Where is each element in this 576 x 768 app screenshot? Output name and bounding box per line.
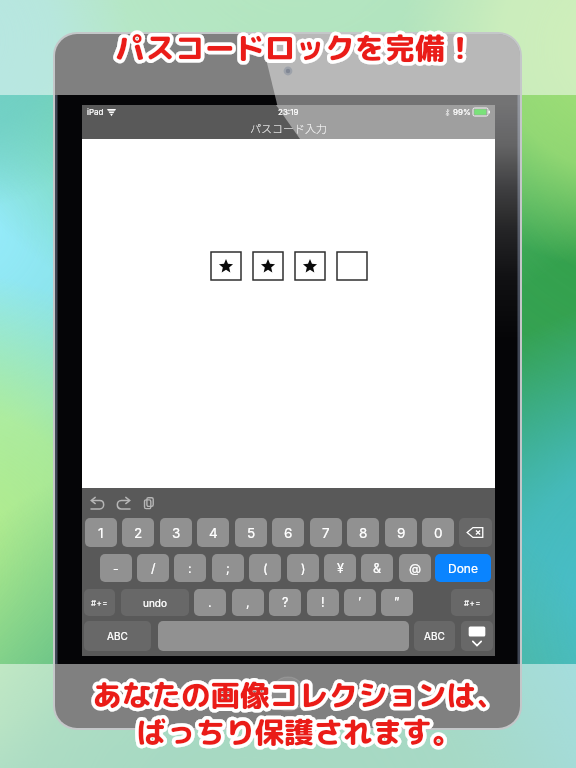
button[interactable]: 7 xyxy=(310,518,342,547)
button[interactable]: Backspace xyxy=(459,518,492,547)
button[interactable]: Copy xyxy=(142,496,156,510)
staticText: . xyxy=(208,595,212,610)
staticText: 6 xyxy=(284,525,293,541)
staticText: 4 xyxy=(209,525,218,541)
staticText: 8 xyxy=(359,525,368,541)
button[interactable]: 8 xyxy=(347,518,379,547)
staticText: ” xyxy=(394,595,400,610)
button[interactable]: ’ xyxy=(344,589,376,616)
button[interactable]: 4 xyxy=(197,518,229,547)
staticText: ABC xyxy=(424,630,445,642)
staticText: / xyxy=(151,561,156,576)
staticText: ABC xyxy=(107,630,128,642)
button[interactable]: @ xyxy=(399,554,431,582)
staticText: 9 xyxy=(397,525,406,541)
staticText: - xyxy=(113,561,119,576)
button[interactable]: #+= xyxy=(84,589,115,616)
button[interactable]: , xyxy=(232,589,264,616)
staticText: & xyxy=(373,561,382,576)
button[interactable]: 6 xyxy=(272,518,304,547)
staticText: ’ xyxy=(358,595,362,610)
button[interactable]: ( xyxy=(249,554,281,582)
button[interactable]: / xyxy=(137,554,169,582)
button[interactable]: . xyxy=(194,589,226,616)
staticText: undo xyxy=(143,597,167,609)
staticText: , xyxy=(246,595,250,610)
button[interactable]: ABC xyxy=(414,621,455,651)
button[interactable]: 2 xyxy=(122,518,154,547)
button[interactable]: 3 xyxy=(160,518,192,547)
staticText: Done xyxy=(448,561,478,576)
staticText: iPad xyxy=(87,107,104,117)
button[interactable]: 1 xyxy=(85,518,117,547)
staticText: 0 xyxy=(434,525,443,541)
staticText: 1 xyxy=(98,525,104,541)
staticText: 7 xyxy=(322,525,330,541)
button[interactable]: ABC xyxy=(84,621,151,651)
button[interactable]: ; xyxy=(212,554,244,582)
button[interactable]: Passcode digit 4 xyxy=(337,252,367,280)
button[interactable]: ! xyxy=(307,589,339,616)
staticText: パスコード入力 xyxy=(250,120,327,136)
staticText: ¥ xyxy=(337,561,344,576)
staticText: ; xyxy=(226,561,230,576)
staticText: #+= xyxy=(464,598,481,608)
button[interactable]: ? xyxy=(269,589,301,616)
button[interactable]: & xyxy=(361,554,393,582)
button[interactable]: Redo xyxy=(116,496,130,510)
button[interactable]: ) xyxy=(287,554,319,582)
staticText: ! xyxy=(321,595,325,610)
staticText: #+= xyxy=(91,598,108,608)
button[interactable]: 9 xyxy=(385,518,417,547)
button[interactable]: Passcode digit 2 xyxy=(253,252,283,280)
button[interactable]: : xyxy=(174,554,206,582)
staticText: ) xyxy=(301,561,306,576)
button[interactable]: Passcode digit 3 xyxy=(295,252,325,280)
button[interactable]: Hide keyboard xyxy=(461,621,493,651)
staticText: 99% xyxy=(453,107,471,117)
button[interactable]: Passcode digit 1 xyxy=(211,252,241,280)
button[interactable]: - xyxy=(100,554,132,582)
button[interactable]: Done xyxy=(435,554,491,582)
staticText: @ xyxy=(409,561,422,576)
staticText: 23:19 xyxy=(278,107,299,117)
button[interactable]: ¥ xyxy=(324,554,356,582)
staticText: あなたの画像コレクションは、 ばっちり保護されます。 xyxy=(11,674,576,752)
staticText: 2 xyxy=(134,525,143,541)
staticText: パスコードロックを完備！ xyxy=(7,27,576,69)
staticText: : xyxy=(188,561,192,576)
staticText: パスコードロックを完備！ xyxy=(7,27,576,69)
button[interactable]: ” xyxy=(381,589,413,616)
button[interactable]: 0 xyxy=(422,518,454,547)
button[interactable]: Undo xyxy=(91,496,105,510)
button[interactable]: 5 xyxy=(235,518,267,547)
staticText: あなたの画像コレクションは、 ばっちり保護されます。 xyxy=(11,674,576,752)
staticText: ? xyxy=(282,595,289,610)
staticText: ( xyxy=(263,561,268,576)
button[interactable]: undo xyxy=(121,589,189,616)
staticText: 3 xyxy=(172,525,181,541)
button[interactable]: #+= xyxy=(451,589,493,616)
staticText: 5 xyxy=(247,525,256,541)
